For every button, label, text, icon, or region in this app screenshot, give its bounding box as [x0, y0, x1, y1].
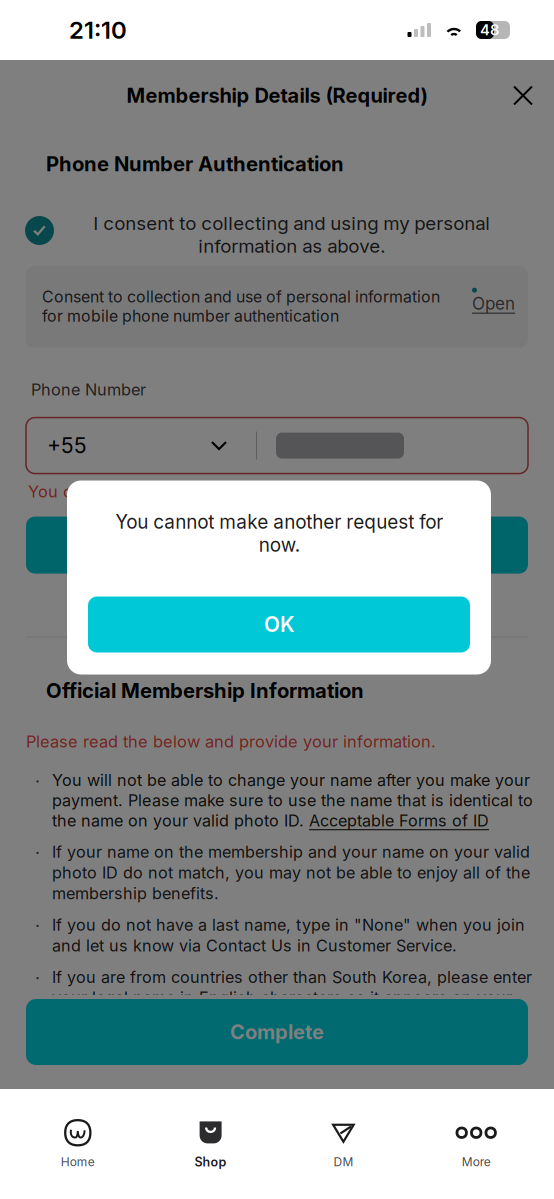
staticText: Please read the below and provide your i… [26, 732, 436, 751]
staticText: Phone Number Authentication [46, 152, 344, 176]
button[interactable]: OK [88, 596, 470, 652]
staticText: I consent to collecting and using my per… [93, 212, 490, 257]
staticText: If your name on the membership and your … [52, 842, 530, 903]
staticText: You cannot make another request for now. [115, 510, 443, 556]
staticText: If you do not have a last name, type in … [52, 915, 525, 955]
staticText: You cannot make another request for now. [28, 482, 363, 501]
staticText: Home [61, 1155, 95, 1169]
button[interactable]: Home [23, 1107, 133, 1181]
button[interactable]: Close [501, 73, 545, 117]
button[interactable]: Request Authentication Number [26, 517, 528, 574]
staticText: Shop [195, 1154, 227, 1170]
staticText: · [35, 842, 40, 863]
button[interactable]: DM [288, 1107, 398, 1181]
staticText: Open [472, 293, 515, 314]
staticText: 21:10 [69, 15, 127, 44]
staticText: Complete [230, 1020, 324, 1044]
staticText: Phone Number [31, 380, 146, 399]
staticText: You will not be able to change your name… [52, 771, 533, 830]
staticText: · [35, 967, 40, 988]
staticText: · [35, 771, 40, 792]
staticText: Request Authentication Number [132, 534, 421, 556]
staticText: +55 [47, 433, 87, 458]
staticText: DM [333, 1155, 353, 1169]
button[interactable]: More [421, 1107, 531, 1181]
button[interactable]: Shop [156, 1107, 266, 1181]
staticText: 48 [480, 21, 499, 39]
staticText: Official Membership Information [46, 678, 364, 703]
staticText: If you are from countries other than Sou… [52, 967, 532, 1028]
staticText: Membership Details (Required) [126, 83, 427, 108]
button[interactable]: Open [472, 287, 516, 314]
staticText: · [35, 915, 40, 936]
staticText: Consent to collection and use of persona… [42, 287, 440, 326]
button[interactable]: Complete [26, 999, 528, 1065]
staticText: More [462, 1155, 491, 1169]
staticText: OK [264, 612, 294, 637]
